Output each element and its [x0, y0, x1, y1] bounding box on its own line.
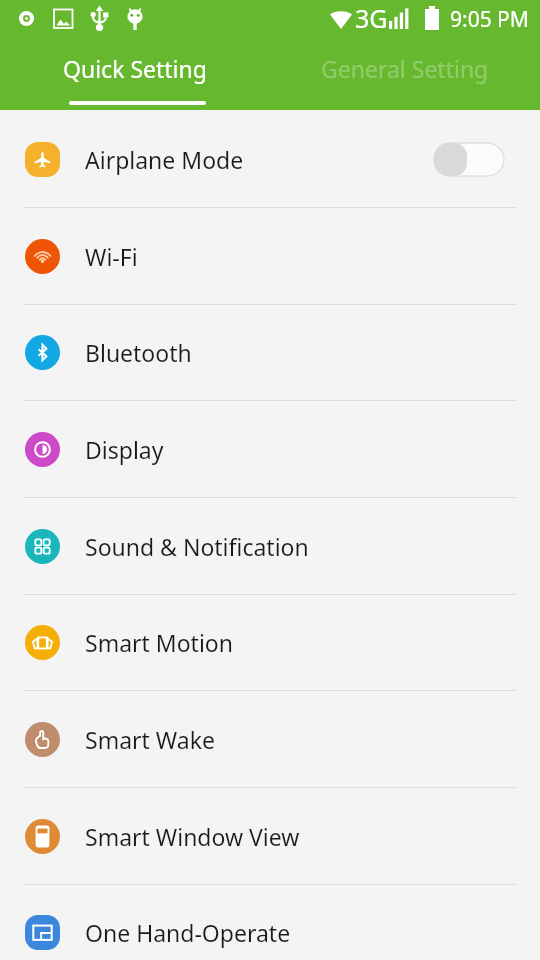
staticText: 3G — [355, 1, 388, 35]
staticText: General Setting — [321, 53, 489, 84]
button[interactable]: Airplane Mode toggle — [433, 142, 505, 177]
button[interactable]: Quick Setting — [0, 40, 270, 110]
staticText: Smart Motion — [85, 627, 233, 658]
staticText: Airplane Mode — [85, 144, 244, 175]
button[interactable]: Sound & Notification — [0, 498, 540, 595]
staticText: Display — [85, 434, 164, 465]
button[interactable]: Airplane Mode — [0, 111, 540, 208]
staticText: Quick Setting — [63, 53, 207, 84]
staticText: 9:05 PM — [450, 5, 529, 34]
button[interactable]: General Setting — [270, 40, 540, 110]
staticText: Sound & Notification — [85, 531, 309, 562]
button[interactable]: One Hand-Operate — [0, 884, 540, 960]
other: Status bar — [0, 0, 540, 40]
staticText: One Hand-Operate — [85, 917, 291, 948]
button[interactable]: Smart Motion — [0, 594, 540, 691]
staticText: Smart Wake — [85, 724, 215, 755]
button[interactable]: Smart Window View — [0, 788, 540, 885]
button[interactable]: Smart Wake — [0, 691, 540, 788]
staticText: Smart Window View — [85, 821, 300, 852]
button[interactable]: Display — [0, 401, 540, 498]
button[interactable]: Wi-Fi — [0, 208, 540, 305]
staticText: Wi-Fi — [85, 241, 138, 272]
staticText: Bluetooth — [85, 337, 192, 368]
button[interactable]: Bluetooth — [0, 304, 540, 401]
